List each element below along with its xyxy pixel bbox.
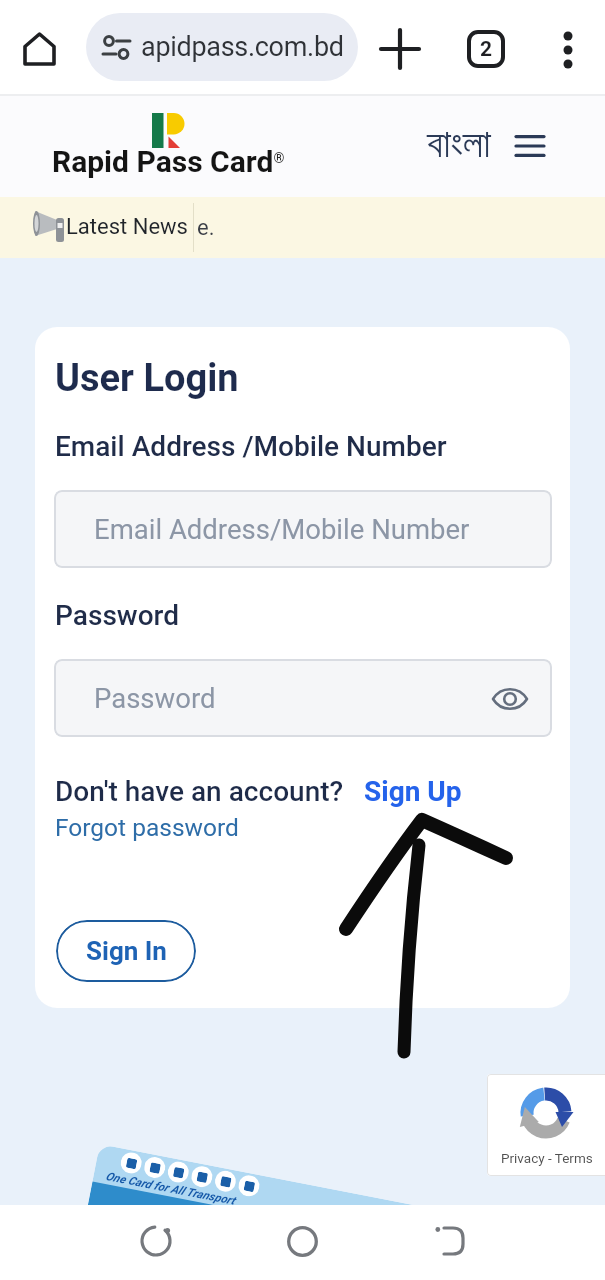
button[interactable] (21, 31, 58, 68)
staticText: apidpass.com.bd (141, 31, 344, 63)
button[interactable] (139, 1224, 173, 1258)
button[interactable]: Forgot password (55, 813, 239, 842)
button[interactable]: Sign In (56, 920, 196, 982)
button[interactable]: apidpass.com.bd (86, 13, 358, 81)
staticText: Password (55, 599, 180, 632)
staticText: Password (94, 682, 216, 714)
button[interactable]: Email Address/Mobile Number (54, 490, 552, 568)
button[interactable]: Sign Up (364, 775, 462, 808)
button[interactable]: বাংলা (427, 125, 491, 165)
button[interactable] (287, 1226, 318, 1257)
button[interactable] (560, 31, 576, 69)
staticText: Sign In (86, 936, 167, 966)
button[interactable] (381, 30, 419, 68)
button[interactable] (436, 1225, 466, 1257)
button[interactable]: 2 (467, 30, 505, 68)
staticText: e. (197, 215, 215, 241)
staticText: Don't have an account? (55, 775, 351, 808)
button[interactable]: Password (54, 659, 552, 737)
button[interactable] (493, 687, 527, 711)
staticText: Latest News (66, 214, 188, 240)
staticText: User Login (55, 356, 239, 401)
button[interactable] (516, 135, 544, 157)
staticText: One Card for All Transport (105, 1169, 237, 1207)
staticText: Email Address /Mobile Number (55, 430, 447, 463)
staticText: Privacy - Terms (501, 1150, 593, 1166)
staticText: Email Address/Mobile Number (94, 513, 470, 545)
staticText: 2 (480, 37, 493, 62)
staticText: Rapid Pass Card® (52, 144, 285, 179)
